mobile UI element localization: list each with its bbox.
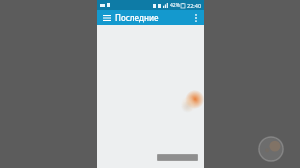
- button[interactable]: Open navigation drawer: [101, 12, 112, 23]
- staticText: Последние: [115, 12, 159, 23]
- staticText: 42%: [170, 2, 180, 9]
- button[interactable]: More options: [190, 12, 201, 23]
- staticText: 22:40: [187, 2, 202, 9]
